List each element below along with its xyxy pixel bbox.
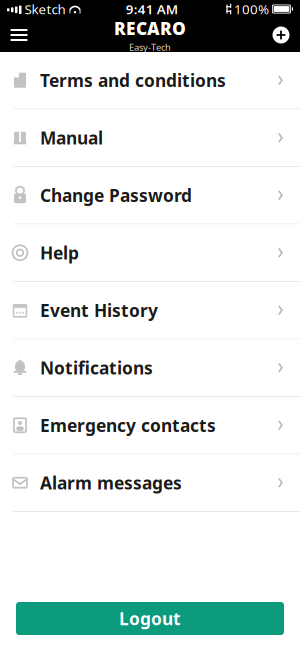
button[interactable]: Logout xyxy=(16,602,284,635)
staticText: Help xyxy=(40,241,79,264)
staticText: Easy-Tech xyxy=(129,41,171,53)
button[interactable]: Alarm messages xyxy=(0,454,300,511)
button[interactable]: Notifications xyxy=(0,339,300,396)
button[interactable]: Emergency contacts xyxy=(0,397,300,453)
staticText: Sketch xyxy=(24,0,65,18)
button[interactable]: Manual xyxy=(0,109,300,166)
staticText: 100% xyxy=(234,0,269,18)
staticText: Emergency contacts xyxy=(40,414,216,437)
staticText: Manual xyxy=(40,126,103,149)
button[interactable]: Event History xyxy=(0,282,300,338)
staticText: Notifications xyxy=(40,356,153,379)
staticText: RECARO xyxy=(114,17,186,40)
button[interactable]: Help xyxy=(0,224,300,281)
staticText: Event History xyxy=(40,299,158,322)
staticText: Alarm messages xyxy=(40,471,182,494)
staticText: Terms and conditions xyxy=(40,69,226,92)
button[interactable]: Change Password xyxy=(0,167,300,223)
staticText: 9:41 AM xyxy=(126,0,178,18)
button[interactable]: Menu xyxy=(1,18,37,52)
staticText: Change Password xyxy=(40,184,192,207)
button[interactable]: Terms and conditions xyxy=(0,52,300,108)
staticText: Logout xyxy=(119,607,181,630)
button[interactable]: Add xyxy=(263,18,299,52)
